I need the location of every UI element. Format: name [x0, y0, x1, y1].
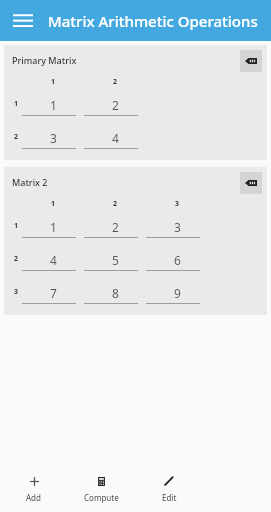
staticText: 5 [112, 252, 119, 268]
button[interactable]: 1 [22, 95, 84, 116]
staticText: Matrix 2 [12, 176, 48, 188]
staticText: 2 [14, 132, 19, 142]
button[interactable]: Compute [67, 465, 135, 512]
button[interactable]: 3 [22, 128, 84, 149]
staticText: 2 [113, 77, 118, 87]
button[interactable]: 6 [146, 250, 208, 271]
button[interactable]: Clear matrix [240, 50, 262, 72]
staticText: 1 [51, 199, 56, 209]
staticText: 4 [112, 130, 119, 146]
button[interactable]: Add [0, 465, 67, 512]
button[interactable]: 1 [22, 217, 84, 238]
staticText: 2 [113, 199, 118, 209]
button[interactable]: 8 [84, 283, 146, 304]
button[interactable]: 7 [22, 283, 84, 304]
staticText: Edit [162, 492, 177, 503]
staticText: Primary Matrix [12, 54, 77, 66]
staticText: 1 [14, 99, 19, 109]
button[interactable]: 4 [22, 250, 84, 271]
button[interactable]: Clear matrix [240, 172, 262, 194]
staticText: 9 [174, 285, 181, 301]
button[interactable]: 4 [84, 128, 146, 149]
button[interactable]: Edit [135, 465, 203, 512]
staticText: 4 [50, 252, 57, 268]
staticText: 1 [51, 77, 56, 87]
staticText: 3 [14, 287, 19, 297]
staticText: 1 [50, 219, 57, 235]
staticText: 2 [112, 219, 119, 235]
button[interactable]: 2 [84, 217, 146, 238]
staticText: 2 [14, 254, 19, 264]
staticText: 8 [112, 285, 119, 301]
staticText: 7 [50, 285, 57, 301]
staticText: Compute [84, 492, 119, 503]
staticText: 3 [174, 219, 181, 235]
staticText: 2 [112, 97, 119, 113]
button[interactable]: Open navigation menu [8, 6, 38, 36]
staticText: Add [26, 492, 41, 503]
staticText: 1 [50, 97, 57, 113]
button[interactable]: 3 [146, 217, 208, 238]
staticText: 1 [14, 221, 19, 231]
button[interactable]: 5 [84, 250, 146, 271]
button[interactable]: 9 [146, 283, 208, 304]
button[interactable]: 2 [84, 95, 146, 116]
staticText: 6 [174, 252, 181, 268]
staticText: 3 [175, 199, 180, 209]
staticText: Matrix Arithmetic Operations [48, 11, 258, 31]
staticText: 3 [50, 130, 57, 146]
